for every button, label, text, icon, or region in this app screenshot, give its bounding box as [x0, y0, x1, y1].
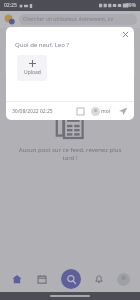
- staticText: moi: [101, 108, 110, 115]
- staticText: Quoi de neuf, Leo ?: [14, 51, 60, 58]
- button[interactable]: Events: [35, 272, 49, 286]
- button[interactable]: Attach file: [44, 65, 54, 75]
- button[interactable]: Add video: [27, 65, 37, 75]
- button[interactable]: Profile: [117, 273, 130, 286]
- button[interactable]: moi: [91, 107, 110, 116]
- staticText: Aucun post sur ce feed, revenez plus tar…: [14, 146, 126, 162]
- staticText: Upload: [24, 69, 41, 76]
- staticText: Quoi de neuf, Leo ?: [15, 41, 70, 49]
- staticText: Chercher un utilisateur, événement, lie: [23, 16, 114, 23]
- button[interactable]: Upload: [17, 55, 47, 81]
- button[interactable]: Search: [61, 269, 81, 289]
- staticText: 02:25: [4, 2, 17, 9]
- staticText: 99%: [126, 2, 136, 9]
- button[interactable]: Quoi de neuf, Leo ?: [10, 49, 130, 60]
- staticText: 30/08/2022 02:25: [12, 108, 53, 115]
- button[interactable]: Close: [121, 30, 130, 39]
- button[interactable]: Options: [77, 108, 84, 115]
- button[interactable]: Home: [10, 272, 24, 286]
- button[interactable]: Notifications: [92, 272, 106, 286]
- button[interactable]: Send: [118, 106, 128, 116]
- button[interactable]: Add image: [10, 65, 20, 75]
- button[interactable]: Chercher un utilisateur, événement, lie: [19, 14, 137, 25]
- other: Logo: [3, 13, 16, 26]
